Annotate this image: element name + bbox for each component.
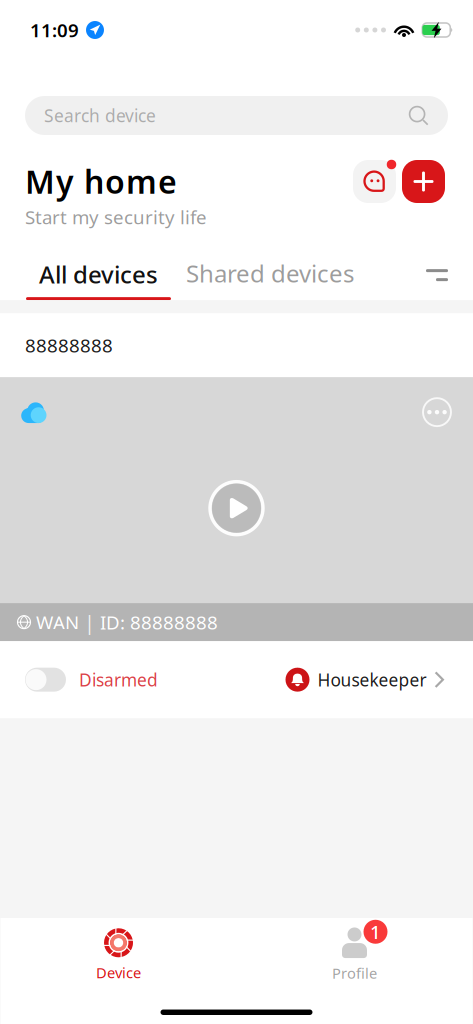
button[interactable]: Disarmed bbox=[25, 668, 158, 692]
staticText: Profile bbox=[332, 963, 377, 983]
button[interactable]: More options bbox=[422, 397, 452, 427]
button[interactable]: Shared devices bbox=[172, 257, 368, 300]
staticText: | bbox=[84, 609, 95, 635]
button[interactable]: Device bbox=[0, 924, 236, 986]
staticText: Search device bbox=[44, 104, 156, 127]
staticText: Device bbox=[96, 963, 141, 982]
staticText: Disarmed bbox=[79, 668, 158, 691]
staticText: 11:09 bbox=[30, 18, 79, 42]
staticText: All devices bbox=[39, 258, 158, 290]
staticText: ID: 88888888 bbox=[95, 610, 218, 635]
staticText: WAN bbox=[31, 610, 84, 635]
button[interactable]: Filter bbox=[426, 269, 448, 300]
staticText: My home bbox=[25, 160, 177, 202]
button[interactable]: Add device bbox=[399, 157, 448, 206]
button[interactable]: Housekeeper bbox=[285, 668, 444, 692]
staticText: Shared devices bbox=[186, 257, 354, 289]
button[interactable]: Messages bbox=[350, 157, 399, 206]
button[interactable]: Play bbox=[208, 480, 265, 537]
button[interactable]: All devices bbox=[25, 248, 172, 300]
staticText: 88888888 bbox=[25, 333, 113, 358]
button[interactable]: Search device bbox=[25, 96, 448, 135]
staticText: Start my security life bbox=[25, 204, 207, 229]
staticText: Housekeeper bbox=[317, 668, 426, 691]
button[interactable]: 1 bbox=[236, 924, 472, 986]
staticText: 1 bbox=[370, 919, 381, 944]
